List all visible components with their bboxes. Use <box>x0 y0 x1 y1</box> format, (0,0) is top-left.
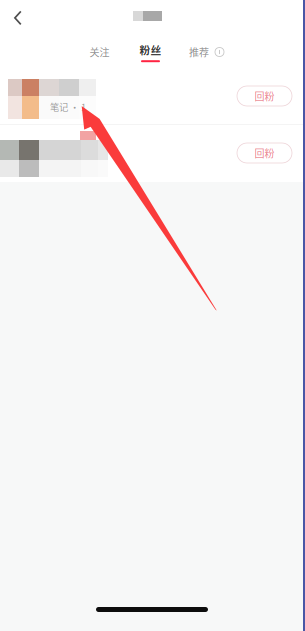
button[interactable]: 回粉 <box>237 143 292 163</box>
button[interactable]: 关注 <box>80 40 119 64</box>
button[interactable] <box>0 125 305 182</box>
staticText: 推荐 <box>189 45 209 59</box>
staticText: 关注 <box>89 45 109 59</box>
staticText: 回粉 <box>254 89 274 103</box>
staticText: 笔记 · 1 <box>50 100 86 113</box>
button[interactable]: 回粉 <box>237 86 292 106</box>
button[interactable]: 推荐 <box>178 40 235 64</box>
staticText: 粉丝 <box>139 42 161 57</box>
staticText: 回粉 <box>254 146 274 160</box>
button[interactable] <box>0 68 305 124</box>
button[interactable]: 粉丝 <box>130 40 171 64</box>
button[interactable]: Back <box>4 7 32 29</box>
